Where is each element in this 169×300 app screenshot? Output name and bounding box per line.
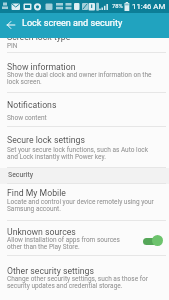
- staticText: Find My Mobile: [7, 188, 66, 198]
- staticText: PIN: [7, 42, 18, 50]
- button[interactable]: [0, 126, 169, 167]
- staticText: Locate and control your device remotely …: [7, 198, 154, 212]
- staticText: Set your secure lock functions, such as …: [7, 146, 149, 160]
- button[interactable]: [0, 92, 169, 127]
- staticText: Show content: [7, 114, 47, 122]
- button[interactable]: [0, 38, 169, 52]
- staticText: Lock screen and security: [22, 18, 123, 29]
- staticText: Secure lock settings: [7, 135, 85, 145]
- button[interactable]: [3, 17, 19, 33]
- staticText: Unknown sources: [7, 227, 76, 237]
- button[interactable]: [0, 220, 169, 255]
- staticText: 78%: [112, 3, 123, 10]
- button[interactable]: [0, 52, 169, 92]
- staticText: Screen lock type: [7, 32, 71, 42]
- staticText: Show the dual clock and owner informatio…: [7, 71, 152, 85]
- staticText: Notifications: [7, 100, 57, 110]
- button[interactable]: [141, 233, 163, 247]
- staticText: Change other security settings, such as …: [7, 275, 148, 289]
- button[interactable]: [0, 183, 169, 220]
- staticText: Other security settings: [7, 266, 94, 276]
- button[interactable]: [0, 255, 169, 292]
- staticText: Security: [8, 171, 34, 179]
- staticText: Show information: [7, 62, 76, 72]
- staticText: Allow installation of apps from sources …: [7, 236, 120, 250]
- staticText: 11:46 AM: [132, 2, 166, 11]
